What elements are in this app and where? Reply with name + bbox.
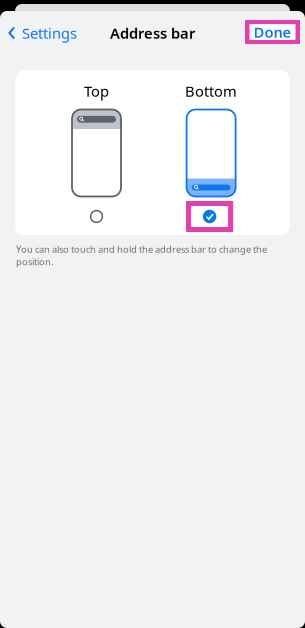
button[interactable]: Top [39, 84, 154, 232]
staticText: Bottom [185, 81, 237, 101]
button[interactable]: Done [245, 20, 300, 46]
staticText: Settings [22, 23, 77, 43]
staticText: Address bar [110, 23, 195, 43]
button[interactable]: Settings [0, 17, 77, 49]
staticText: You can also touch and hold the address … [16, 243, 267, 268]
staticText: Top [84, 81, 109, 101]
button[interactable]: Bottom [154, 84, 268, 232]
staticText: Done [253, 22, 291, 42]
